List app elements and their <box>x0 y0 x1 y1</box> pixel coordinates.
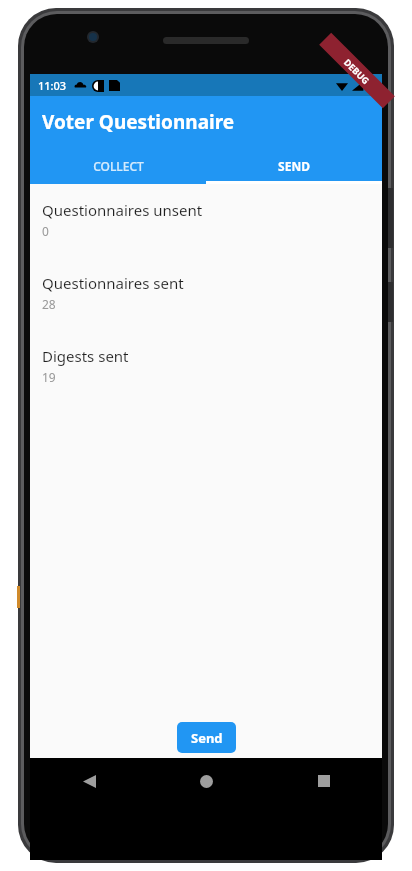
staticText: DEBUG <box>342 56 372 86</box>
staticText: Voter Questionnaire <box>42 109 235 135</box>
staticText: 19 <box>42 369 56 385</box>
button[interactable]: SEND <box>206 147 382 184</box>
staticText: 11:03 <box>38 78 67 93</box>
staticText: Send <box>191 729 223 747</box>
staticText: 0 <box>42 223 49 239</box>
staticText: Digests sent <box>42 346 129 366</box>
button[interactable]: Questionnaires sent <box>30 271 382 314</box>
button[interactable]: Digests sent <box>30 344 382 387</box>
button[interactable]: COLLECT <box>30 147 206 184</box>
button[interactable]: Home <box>148 758 265 804</box>
button[interactable]: Send <box>177 722 236 753</box>
staticText: 28 <box>42 296 56 312</box>
staticText: COLLECT <box>93 158 144 174</box>
button[interactable]: Recent apps <box>265 758 382 804</box>
staticText: SEND <box>278 158 310 174</box>
button[interactable]: Back <box>30 758 148 804</box>
staticText: Questionnaires sent <box>42 273 184 293</box>
staticText: Questionnaires unsent <box>42 200 203 220</box>
button[interactable]: Questionnaires unsent <box>30 198 382 241</box>
